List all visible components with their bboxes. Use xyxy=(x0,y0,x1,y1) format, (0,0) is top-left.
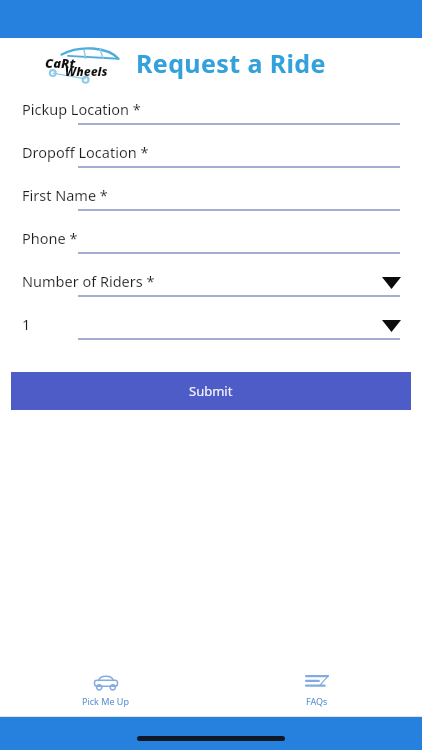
staticText: Pick Me Up xyxy=(82,695,129,707)
button[interactable]: 1 xyxy=(0,312,422,355)
staticText: Wheels xyxy=(65,63,108,79)
button[interactable]: FAQs xyxy=(211,664,422,716)
button[interactable]: Dropoff Location * xyxy=(0,140,422,183)
staticText: Pickup Location * xyxy=(22,99,141,119)
staticText: Submit xyxy=(189,382,233,400)
button[interactable]: Pick Me Up xyxy=(0,664,211,716)
other: Pick Me Up xyxy=(93,673,119,691)
staticText: Dropoff Location * xyxy=(22,142,149,162)
other: FAQs xyxy=(305,674,329,691)
button[interactable]: Submit xyxy=(11,372,411,410)
button[interactable]: Number of Riders * xyxy=(0,269,422,312)
button[interactable]: Pickup Location * xyxy=(0,97,422,140)
staticText: CaRt xyxy=(45,54,76,72)
staticText: Phone * xyxy=(22,228,78,248)
staticText: 1 xyxy=(22,314,31,334)
button[interactable]: First Name * xyxy=(0,183,422,226)
staticText: First Name * xyxy=(22,185,108,205)
button[interactable]: Phone * xyxy=(0,226,422,269)
staticText: FAQs xyxy=(306,695,328,707)
staticText: Number of Riders * xyxy=(22,271,155,291)
staticText: Request a Ride xyxy=(136,46,326,80)
